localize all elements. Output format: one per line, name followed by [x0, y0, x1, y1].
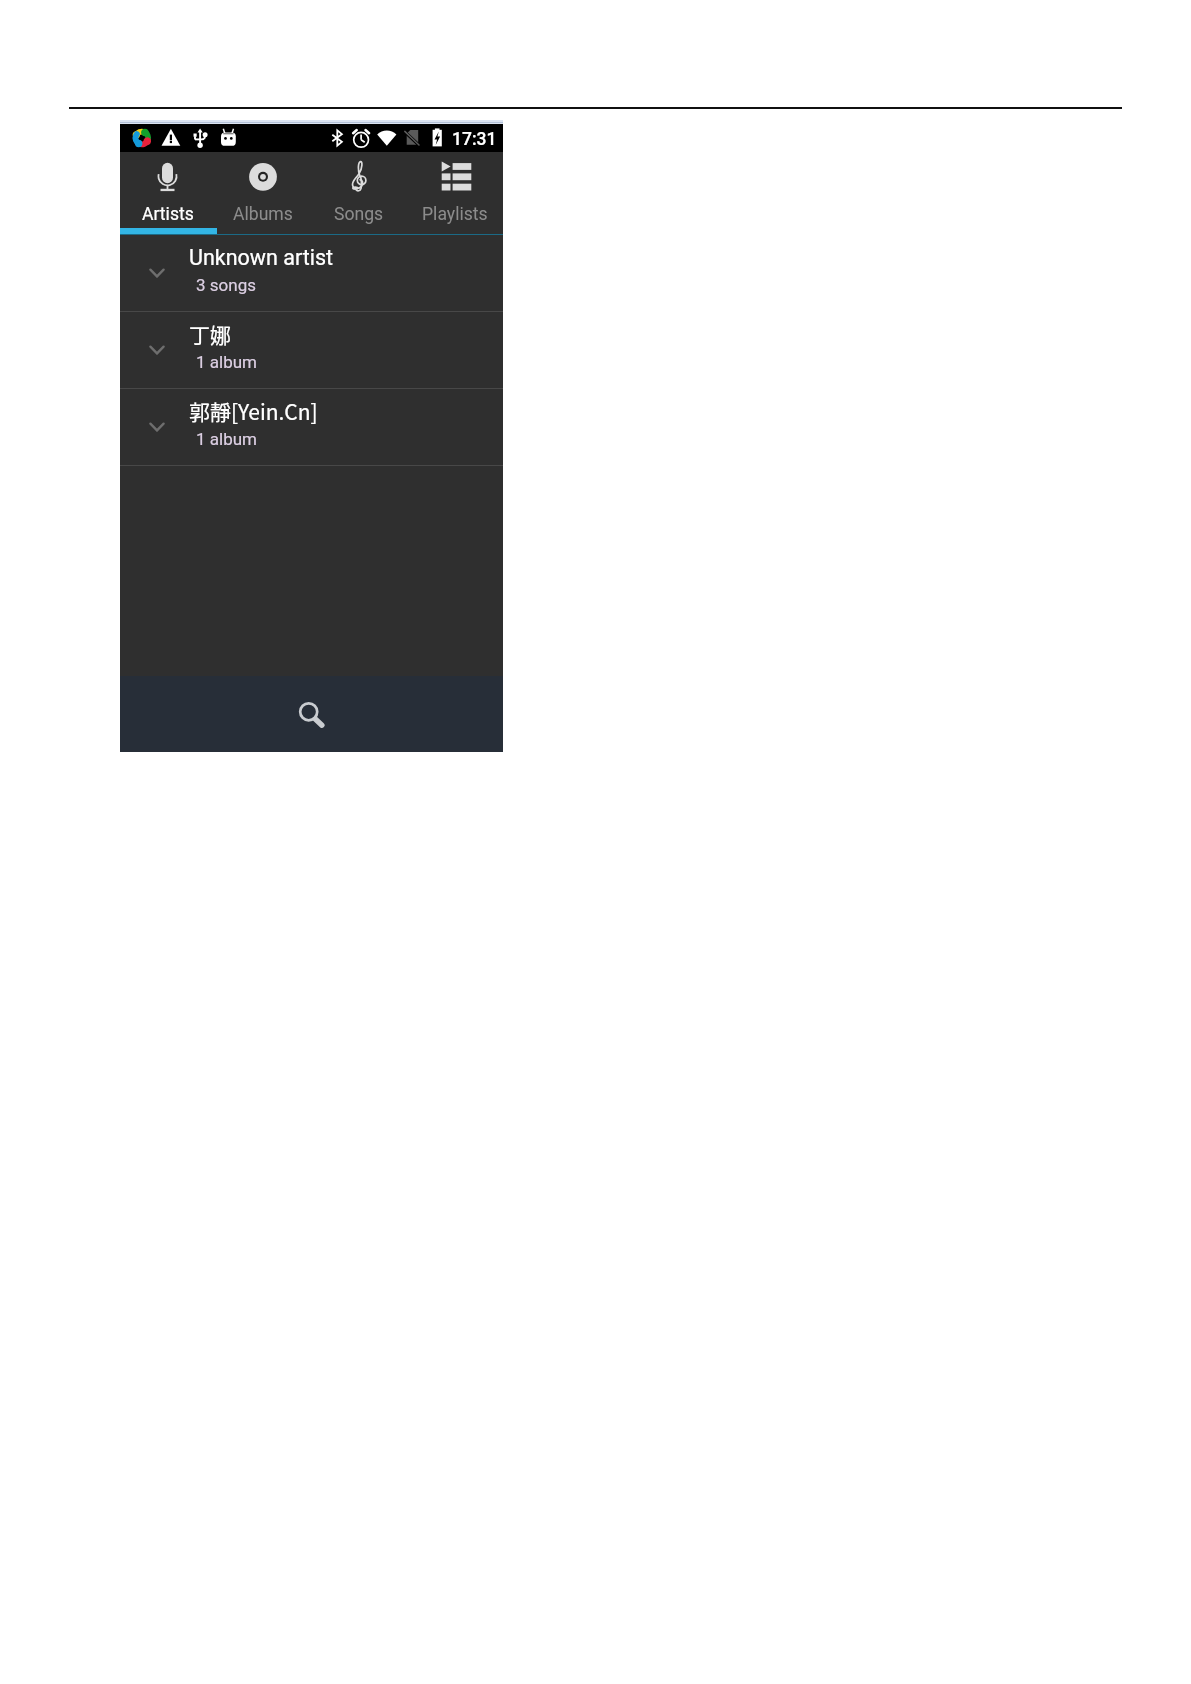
staticText: 丁娜: [189, 319, 231, 349]
button[interactable]: Artists: [120, 152, 215, 228]
staticText: 1 album: [196, 352, 257, 372]
button[interactable]: Playlists: [407, 152, 503, 228]
button[interactable]: Songs: [311, 152, 407, 228]
button[interactable]: Unknown artist: [120, 235, 503, 312]
staticText: Songs: [334, 204, 384, 225]
staticText: Unknown artist: [189, 245, 334, 270]
button[interactable]: Search: [120, 676, 503, 752]
staticText: Playlists: [422, 204, 488, 225]
button[interactable]: Albums: [215, 152, 311, 228]
staticText: Artists: [142, 204, 194, 225]
button[interactable]: 丁娜: [120, 312, 503, 389]
button[interactable]: 郭靜[Yein.Cn]: [120, 389, 503, 466]
staticText: 郭靜[Yein.Cn]: [189, 396, 318, 426]
staticText: 3 songs: [196, 275, 256, 295]
staticText: 17:31: [452, 129, 497, 150]
staticText: 1 album: [196, 429, 257, 449]
staticText: Albums: [233, 204, 293, 225]
